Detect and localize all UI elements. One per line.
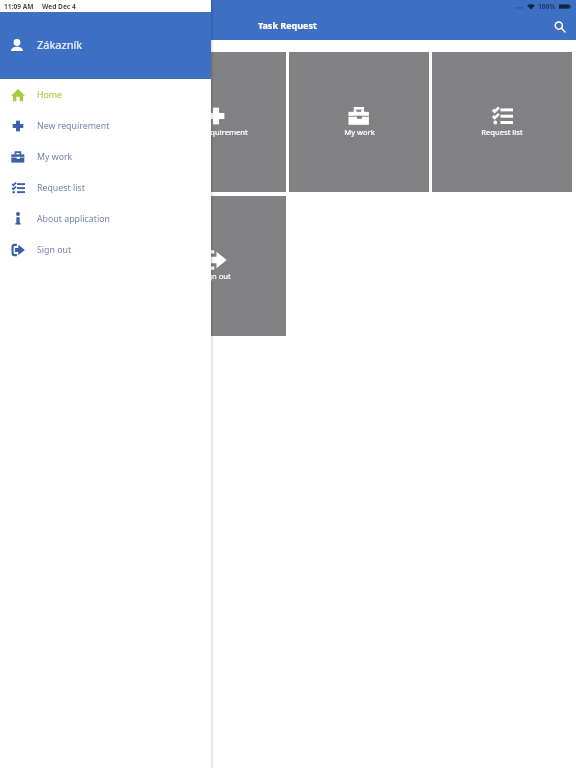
- staticText: About application: [37, 213, 110, 225]
- staticText: Sign out: [201, 271, 231, 281]
- staticText: Request list: [37, 182, 85, 194]
- staticText: My work: [37, 151, 73, 163]
- staticText: 11:09 AM: [4, 2, 34, 11]
- button[interactable]: Search: [549, 16, 571, 38]
- staticText: Task Request: [258, 19, 317, 31]
- staticText: 100%: [538, 2, 556, 11]
- button[interactable]: Sign out: [0, 234, 211, 265]
- button[interactable]: New requirement: [0, 110, 211, 141]
- button[interactable]: Sign out: [146, 196, 286, 336]
- button[interactable]: Request list: [432, 52, 572, 192]
- button[interactable]: Home: [0, 79, 211, 110]
- button[interactable]: About application: [3, 52, 143, 192]
- staticText: New requirement: [37, 120, 110, 132]
- button[interactable]: My work: [289, 52, 429, 192]
- staticText: Home: [37, 89, 63, 101]
- button[interactable]: Home: [3, 196, 143, 336]
- staticText: Sign out: [37, 244, 72, 256]
- button[interactable]: New requirement: [146, 52, 286, 192]
- button[interactable]: About application: [0, 203, 211, 234]
- staticText: Wed Dec 4: [42, 2, 76, 11]
- staticText: New requirement: [185, 127, 248, 137]
- button[interactable]: My work: [0, 141, 211, 172]
- button[interactable]: Request list: [0, 172, 211, 203]
- staticText: Zákazník: [37, 37, 83, 52]
- staticText: Request list: [481, 127, 523, 137]
- staticText: About application: [42, 127, 105, 137]
- staticText: My work: [344, 127, 375, 137]
